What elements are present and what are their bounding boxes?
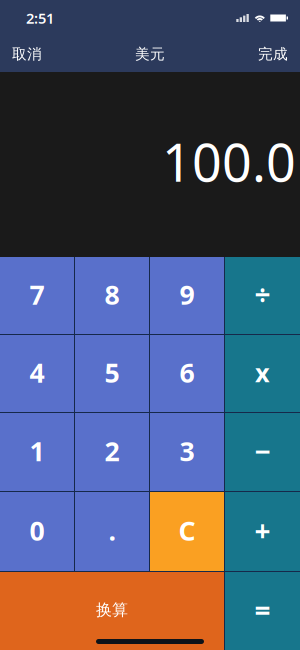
staticText: 5: [104, 355, 119, 390]
staticText: 100.0: [162, 127, 296, 196]
staticText: 8: [104, 277, 119, 312]
staticText: +: [254, 512, 270, 549]
button[interactable]: Divide: [225, 257, 300, 334]
button[interactable]: 完成: [236, 36, 300, 72]
button[interactable]: 1: [0, 413, 74, 491]
staticText: ÷: [254, 276, 270, 313]
staticText: 取消: [12, 45, 42, 63]
staticText: .: [108, 513, 115, 548]
button[interactable]: 3: [150, 413, 224, 491]
button[interactable]: Decimal point: [75, 492, 149, 571]
button[interactable]: Equals: [225, 572, 300, 650]
button[interactable]: 6: [150, 335, 224, 412]
staticText: 2:51: [26, 8, 54, 28]
staticText: =: [254, 591, 270, 629]
staticText: 1: [29, 433, 44, 469]
button[interactable]: 换算: [0, 572, 224, 650]
button[interactable]: 8: [75, 257, 149, 334]
button[interactable]: 0: [0, 492, 74, 571]
staticText: 2: [104, 433, 119, 469]
button[interactable]: Multiply: [225, 335, 300, 412]
staticText: 3: [179, 433, 194, 469]
staticText: C: [178, 513, 195, 548]
button[interactable]: Subtract: [225, 413, 300, 491]
button[interactable]: 2: [75, 413, 149, 491]
staticText: 6: [179, 355, 194, 390]
staticText: 7: [29, 277, 44, 312]
staticText: 9: [179, 277, 194, 312]
staticText: 美元: [135, 45, 165, 63]
button[interactable]: Add: [225, 492, 300, 571]
staticText: 0: [29, 513, 44, 548]
staticText: 完成: [258, 45, 288, 63]
button[interactable]: 4: [0, 335, 74, 412]
staticText: 4: [29, 355, 44, 390]
button[interactable]: 7: [0, 257, 74, 334]
staticText: −: [254, 432, 270, 470]
staticText: x: [255, 356, 270, 389]
button[interactable]: Clear: [150, 492, 224, 571]
button[interactable]: 5: [75, 335, 149, 412]
button[interactable]: 9: [150, 257, 224, 334]
button[interactable]: 取消: [0, 36, 64, 72]
staticText: 换算: [96, 600, 128, 620]
